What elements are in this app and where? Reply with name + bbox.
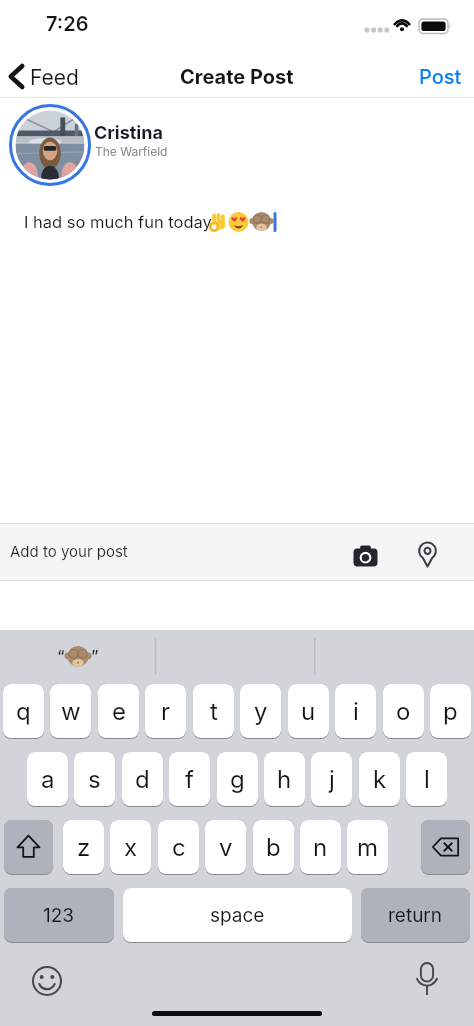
staticText: n xyxy=(313,833,328,862)
staticText: x xyxy=(124,833,138,862)
button[interactable]: f xyxy=(169,752,210,807)
button[interactable]: k xyxy=(359,752,400,807)
staticText: y xyxy=(254,697,268,726)
staticText: space xyxy=(210,904,265,927)
button[interactable] xyxy=(4,820,53,875)
staticText: ” xyxy=(91,647,99,668)
staticText: a xyxy=(41,765,55,794)
button[interactable]: n xyxy=(300,820,341,875)
button[interactable]: 123 xyxy=(4,888,114,943)
button[interactable]: b xyxy=(253,820,294,875)
button[interactable]: g xyxy=(217,752,258,807)
button[interactable]: u xyxy=(288,684,329,739)
staticText: k xyxy=(373,765,387,794)
staticText: z xyxy=(77,833,91,862)
staticText: h xyxy=(277,765,292,794)
staticText: I had so much fun today xyxy=(24,212,212,232)
button[interactable]: v xyxy=(205,820,246,875)
staticText: j xyxy=(329,765,335,794)
button[interactable]: h xyxy=(264,752,305,807)
staticText: c xyxy=(172,833,186,862)
button[interactable]: l xyxy=(406,752,447,807)
staticText: r xyxy=(161,697,171,726)
staticText: Create Post xyxy=(180,65,294,89)
staticText: t xyxy=(210,697,218,726)
button[interactable]: “ xyxy=(0,630,155,684)
button[interactable]: w xyxy=(50,684,91,739)
staticText: g xyxy=(230,765,245,794)
staticText: l xyxy=(424,765,430,794)
staticText: Post xyxy=(419,65,462,89)
button[interactable]: t xyxy=(193,684,234,739)
button[interactable]: o xyxy=(383,684,424,739)
button[interactable]: d xyxy=(122,752,163,807)
staticText: e xyxy=(112,697,126,726)
button[interactable]: z xyxy=(63,820,104,875)
button[interactable] xyxy=(9,104,91,186)
button[interactable] xyxy=(405,530,450,574)
button[interactable]: a xyxy=(27,752,68,807)
staticText: Feed xyxy=(30,65,79,90)
staticText: return xyxy=(388,904,443,927)
button[interactable]: i xyxy=(335,684,376,739)
button[interactable]: space xyxy=(123,888,352,943)
staticText: s xyxy=(88,765,101,794)
button[interactable] xyxy=(405,957,449,1001)
staticText: u xyxy=(301,697,316,726)
staticText: m xyxy=(357,833,379,862)
button[interactable]: c xyxy=(158,820,199,875)
staticText: Cristina xyxy=(94,122,163,144)
staticText: Add to your post xyxy=(10,542,128,560)
button[interactable] xyxy=(25,959,69,1003)
button[interactable]: j xyxy=(311,752,352,807)
button[interactable]: p xyxy=(430,684,471,739)
staticText: p xyxy=(443,697,458,726)
staticText: q xyxy=(16,697,31,726)
staticText: d xyxy=(135,765,150,794)
staticText: i xyxy=(353,697,359,726)
staticText: The Warfield xyxy=(95,144,168,159)
button[interactable]: Post xyxy=(410,56,470,98)
button[interactable]: x xyxy=(110,820,151,875)
staticText: b xyxy=(266,833,281,862)
staticText: 7:26 xyxy=(46,12,89,36)
staticText: o xyxy=(396,697,411,726)
button[interactable] xyxy=(421,820,470,875)
button[interactable]: q xyxy=(3,684,44,739)
button[interactable] xyxy=(343,530,388,574)
button[interactable]: y xyxy=(240,684,281,739)
staticText: f xyxy=(185,765,194,794)
button[interactable]: e xyxy=(98,684,139,739)
staticText: “ xyxy=(57,647,65,668)
staticText: 123 xyxy=(43,904,75,927)
button[interactable]: m xyxy=(347,820,388,875)
staticText: w xyxy=(61,697,81,726)
button[interactable]: s xyxy=(74,752,115,807)
staticText: v xyxy=(219,833,233,862)
button[interactable]: Feed xyxy=(0,56,110,98)
button[interactable]: r xyxy=(145,684,186,739)
button[interactable]: return xyxy=(361,888,470,943)
